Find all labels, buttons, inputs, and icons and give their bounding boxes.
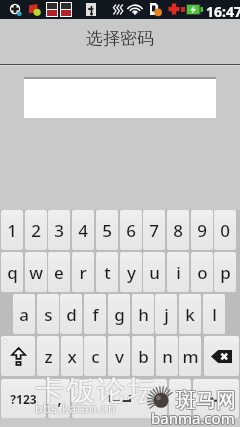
button[interactable]: q (1, 252, 23, 292)
button[interactable]: t (96, 252, 118, 292)
staticText: j (164, 303, 169, 326)
staticText: , (57, 387, 62, 410)
button[interactable]: 6 (120, 210, 142, 250)
staticText: 9 (197, 219, 207, 242)
button[interactable]: 8 (167, 210, 189, 250)
button[interactable]: z (37, 336, 59, 376)
staticText: 斑马网 (176, 389, 236, 414)
button[interactable]: p (214, 252, 236, 292)
button[interactable]: b (132, 336, 154, 376)
staticText: s (44, 303, 53, 326)
staticText: 2 (31, 219, 41, 242)
staticText: x (67, 345, 77, 368)
button[interactable]: i (167, 252, 189, 292)
button[interactable]: w (25, 252, 47, 292)
button[interactable]: 4 (72, 210, 94, 250)
staticText: 卡饭论坛 (37, 374, 160, 409)
staticText: bbs.kafan.cn (34, 400, 116, 416)
staticText: banma.com (152, 407, 236, 427)
button[interactable]: Backspace (204, 336, 239, 376)
staticText: 斑马网 (176, 388, 236, 413)
staticText: 卡饭论坛 (35, 374, 158, 409)
button[interactable]: d (60, 294, 82, 334)
staticText: 斑马网 (177, 387, 237, 412)
staticText: banma.com (150, 409, 234, 427)
button[interactable]: g (108, 294, 130, 334)
staticText: 4 (78, 219, 88, 242)
button[interactable]: f (84, 294, 106, 334)
button[interactable]: u (143, 252, 165, 292)
staticText: l (212, 303, 217, 326)
button[interactable]: e (48, 252, 70, 292)
button[interactable]: o (191, 252, 213, 292)
staticText: q (7, 261, 18, 284)
staticText: c (91, 345, 100, 368)
staticText: 7 (149, 219, 159, 242)
staticText: i (176, 261, 181, 284)
button[interactable]: Enter (193, 379, 239, 418)
staticText: bbs.kafan.cn (34, 401, 116, 417)
staticText: g (114, 303, 125, 326)
staticText: bbs.kafan.cn (36, 401, 118, 417)
staticText: 斑马网 (175, 389, 235, 414)
button[interactable] (24, 77, 216, 118)
button[interactable]: 3 (48, 210, 70, 250)
staticText: 卡饭论坛 (36, 372, 159, 407)
staticText: bbs.kafan.cn (35, 399, 117, 415)
button[interactable]: m (179, 336, 201, 376)
button[interactable]: , (48, 379, 70, 418)
staticText: z (44, 345, 53, 368)
staticText: 0 (220, 219, 230, 242)
staticText: banma.com (152, 409, 236, 427)
button[interactable]: . (169, 379, 191, 418)
staticText: b (138, 345, 149, 368)
staticText: bbs.kafan.cn (36, 400, 118, 416)
staticText: 16:47 (206, 2, 240, 21)
staticText: p (220, 261, 231, 284)
staticText: banma.com (150, 407, 234, 427)
button[interactable]: k (179, 294, 201, 334)
staticText: h (138, 303, 149, 326)
staticText: y (127, 261, 136, 284)
button[interactable]: x (61, 336, 83, 376)
button[interactable]: ?123 (1, 379, 46, 418)
staticText: r (79, 261, 87, 284)
staticText: d (66, 303, 77, 326)
staticText: f (92, 303, 99, 326)
button[interactable]: 1 (1, 210, 23, 250)
staticText: bbs.kafan.cn (35, 400, 117, 416)
button[interactable]: c (84, 336, 106, 376)
button[interactable]: r (72, 252, 94, 292)
staticText: 卡饭论坛 (37, 373, 160, 408)
staticText: ?123 (10, 391, 37, 407)
staticText: banma.com (151, 409, 235, 427)
staticText: 卡饭论坛 (36, 374, 159, 409)
button[interactable]: 2 (25, 210, 47, 250)
button[interactable]: n (156, 336, 178, 376)
button[interactable]: l (203, 294, 225, 334)
staticText: k (185, 303, 195, 326)
button[interactable]: 7 (143, 210, 165, 250)
staticText: v (115, 345, 124, 368)
button[interactable]: h (132, 294, 154, 334)
button[interactable]: Space (72, 379, 167, 418)
staticText: 1 (7, 219, 17, 242)
staticText: 选择密码 (86, 28, 154, 49)
staticText: banma.com (151, 407, 235, 427)
staticText: 3 (54, 219, 64, 242)
button[interactable]: v (108, 336, 130, 376)
staticText: n (162, 345, 173, 368)
staticText: 卡饭论坛 (35, 373, 158, 408)
button[interactable]: y (120, 252, 142, 292)
button[interactable]: Shift (1, 336, 35, 376)
staticText: 卡饭论坛 (35, 372, 158, 407)
button[interactable]: 5 (96, 210, 118, 250)
staticText: bbs.kafan.cn (34, 399, 116, 415)
button[interactable]: 9 (191, 210, 213, 250)
button[interactable]: a (13, 294, 35, 334)
staticText: banma.com (150, 408, 234, 427)
staticText: . (178, 387, 183, 410)
button[interactable]: s (37, 294, 59, 334)
button[interactable]: j (155, 294, 177, 334)
button[interactable]: 0 (214, 210, 236, 250)
